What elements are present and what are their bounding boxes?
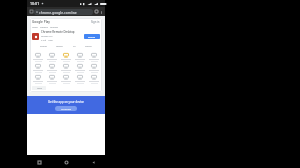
staticText: Apps (32, 25, 38, 28)
button[interactable]: Device (32, 53, 44, 62)
staticText: Get the app on your device (48, 100, 84, 104)
button[interactable]: Continue (55, 106, 77, 111)
button[interactable]: Device (32, 64, 44, 73)
button[interactable]: chrome.google.com/we (34, 9, 93, 15)
button[interactable]: TV (72, 44, 77, 49)
staticText: 4.2 ★ (41, 39, 47, 42)
button[interactable]: More (32, 86, 46, 90)
button[interactable]: Device (74, 75, 86, 84)
staticText: More (37, 87, 42, 90)
staticText: TV (73, 45, 76, 48)
button[interactable]: Device (32, 75, 44, 84)
staticText: Phone (40, 45, 47, 48)
button[interactable]: Device (74, 64, 86, 73)
button[interactable]: Chrome Remote Desktop (32, 30, 100, 42)
button[interactable]: Tablet (55, 44, 64, 49)
staticText: Google Play (32, 20, 51, 24)
staticText: Tablet (56, 45, 63, 48)
button[interactable]: Device (46, 53, 58, 62)
staticText: Games (40, 25, 48, 28)
button[interactable]: Device (46, 75, 58, 84)
button[interactable]: Device (46, 64, 58, 73)
staticText: Continue (61, 107, 72, 110)
button[interactable]: Device (74, 53, 86, 62)
button[interactable]: Install (84, 34, 100, 39)
staticText: Sign in (91, 20, 100, 24)
button[interactable]: Device (88, 53, 100, 62)
staticText: Install (88, 35, 96, 38)
button[interactable]: Phone (39, 44, 48, 49)
button[interactable]: Home (29, 9, 34, 14)
button[interactable]: Device (88, 75, 100, 84)
staticText: 10:01 (30, 1, 40, 6)
staticText: Watch (85, 45, 92, 48)
button[interactable]: Device (60, 75, 72, 84)
button[interactable]: Recent apps (35, 158, 43, 166)
button[interactable]: Watch (84, 44, 93, 49)
staticText: Chrome Remote Desktop (41, 30, 75, 34)
staticText: Google LLC (41, 35, 53, 38)
button[interactable]: Back (89, 158, 97, 166)
button[interactable]: Device (60, 53, 72, 62)
button[interactable]: Device (88, 64, 100, 73)
staticText: chrome.google.com/we (39, 10, 77, 15)
button[interactable]: Device (60, 64, 72, 73)
button[interactable]: Tabs (94, 9, 99, 14)
button[interactable]: More options (99, 10, 103, 14)
staticText: 10M+ (48, 39, 54, 42)
button[interactable]: Home (62, 158, 70, 166)
staticText: Movies (50, 25, 58, 28)
